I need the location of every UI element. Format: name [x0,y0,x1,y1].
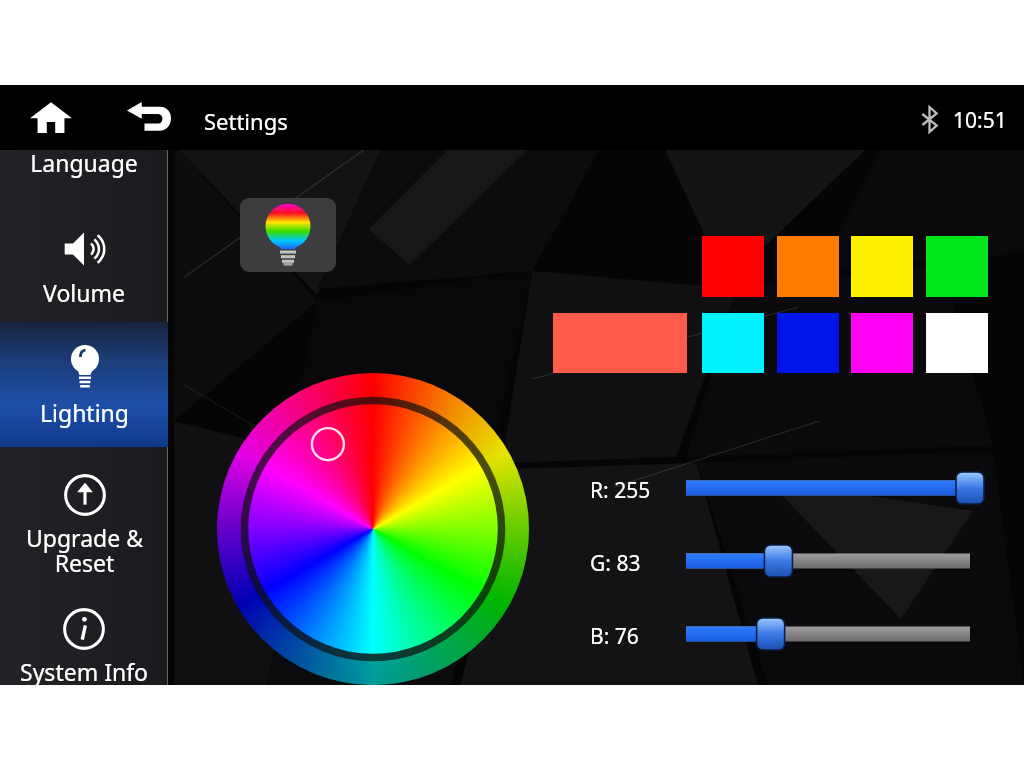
staticText: Language [30,147,138,178]
button[interactable]: Language [0,133,168,191]
button[interactable]: Upgrade & Reset [0,462,168,590]
button[interactable]: System Info [0,591,168,703]
staticText: Volume [43,277,125,308]
button[interactable]: Home [22,94,80,140]
button[interactable]: Volume [0,211,168,323]
staticText: R: 255 [590,476,651,505]
staticText: System Info [20,656,148,687]
staticText: B: 76 [590,622,639,651]
button[interactable]: R: 255 [672,472,984,504]
staticText: G: 83 [590,549,641,578]
staticText: 10:51 [953,106,1007,135]
button[interactable]: Current colour preview [240,198,336,272]
staticText: Lighting [40,397,129,428]
button[interactable]: Lighting [0,322,168,447]
staticText: Settings [204,106,288,136]
button[interactable]: B: 76 [672,618,984,650]
button[interactable]: Back [120,94,180,140]
button[interactable]: Colour wheel [217,373,529,685]
staticText: Upgrade & Reset [26,522,143,579]
button[interactable]: G: 83 [672,545,984,577]
